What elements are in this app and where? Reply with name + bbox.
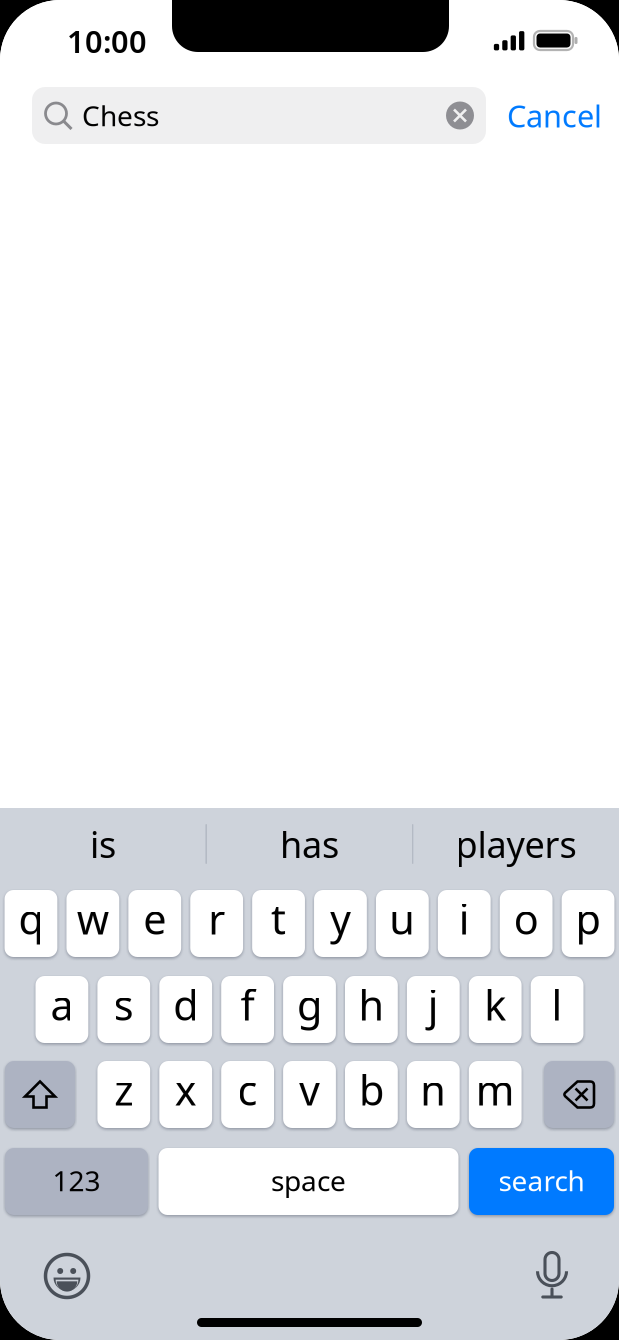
staticText: n <box>420 1062 446 1117</box>
staticText: m <box>476 1062 515 1117</box>
button[interactable]: a <box>35 976 88 1043</box>
button[interactable]: t <box>252 890 305 957</box>
staticText: u <box>389 891 415 946</box>
button[interactable]: is <box>0 808 205 880</box>
button[interactable]: j <box>407 976 460 1043</box>
staticText: z <box>114 1062 133 1117</box>
button[interactable]: s <box>97 976 150 1043</box>
staticText: x <box>175 1062 197 1117</box>
staticText: d <box>173 977 198 1032</box>
staticText: l <box>552 977 563 1032</box>
button[interactable]: w <box>66 890 119 957</box>
button[interactable]: v <box>283 1061 336 1128</box>
button[interactable]: y <box>314 890 367 957</box>
staticText: o <box>514 891 539 946</box>
button[interactable]: 123 <box>5 1148 148 1215</box>
button[interactable]: c <box>221 1061 274 1128</box>
button[interactable]: g <box>283 976 336 1043</box>
button[interactable]: Dictation <box>526 1250 578 1302</box>
button[interactable]: Emoji <box>41 1250 93 1302</box>
button[interactable]: k <box>469 976 522 1043</box>
staticText: j <box>428 977 439 1032</box>
button[interactable]: z <box>97 1061 150 1128</box>
button[interactable]: r <box>190 890 243 957</box>
staticText: q <box>18 891 43 946</box>
button[interactable]: Cancel <box>497 87 612 144</box>
staticText: h <box>358 977 384 1032</box>
staticText: is <box>90 820 116 868</box>
button[interactable]: b <box>345 1061 398 1128</box>
button[interactable]: q <box>5 890 57 957</box>
staticText: v <box>299 1062 320 1117</box>
staticText: b <box>359 1062 384 1117</box>
staticText: 123 <box>52 1162 100 1199</box>
staticText: k <box>484 977 506 1032</box>
button[interactable]: has <box>207 808 412 880</box>
staticText: p <box>575 891 600 946</box>
button[interactable]: Delete <box>544 1061 614 1128</box>
staticText: f <box>241 977 255 1032</box>
button[interactable]: d <box>159 976 212 1043</box>
button[interactable]: l <box>531 976 583 1043</box>
button[interactable]: n <box>407 1061 460 1128</box>
staticText: Cancel <box>507 95 602 136</box>
staticText: i <box>459 891 470 946</box>
staticText: g <box>297 977 322 1032</box>
button[interactable]: h <box>345 976 398 1043</box>
button[interactable]: i <box>438 890 491 957</box>
button[interactable]: f <box>221 976 274 1043</box>
staticText: t <box>271 891 286 946</box>
staticText: y <box>330 891 351 946</box>
staticText: r <box>208 891 225 946</box>
button[interactable]: e <box>128 890 181 957</box>
staticText: players <box>456 820 577 868</box>
staticText: has <box>280 820 339 868</box>
staticText: c <box>238 1062 258 1117</box>
button[interactable]: u <box>376 890 429 957</box>
button[interactable]: players <box>414 808 619 880</box>
button[interactable]: x <box>159 1061 212 1128</box>
staticText: Chess <box>82 97 159 134</box>
staticText: e <box>143 891 166 946</box>
button[interactable]: space <box>158 1148 458 1215</box>
staticText: a <box>50 977 73 1032</box>
staticText: 10:00 <box>67 21 147 61</box>
staticText: s <box>114 977 134 1032</box>
button[interactable]: p <box>562 890 614 957</box>
staticText: search <box>498 1162 584 1199</box>
button[interactable]: Chess <box>32 87 486 144</box>
button[interactable]: o <box>500 890 552 957</box>
button[interactable]: search <box>469 1148 614 1215</box>
staticText: w <box>77 891 109 946</box>
button[interactable]: Shift <box>5 1061 75 1128</box>
staticText: space <box>271 1162 346 1199</box>
button[interactable]: m <box>469 1061 522 1128</box>
